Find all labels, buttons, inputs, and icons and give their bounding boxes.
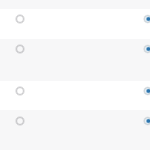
button[interactable]: Choose Option two [0, 39, 150, 81]
button[interactable]: Choose Option two [12, 41, 28, 57]
button[interactable]: Option four is selected [134, 113, 150, 129]
button[interactable]: Choose Option three [0, 81, 150, 110]
button[interactable]: Choose Option four [12, 113, 28, 129]
button[interactable]: Choose Option four [0, 110, 150, 150]
button[interactable]: Choose Option one [12, 11, 28, 27]
button[interactable]: Option one is selected [134, 11, 150, 27]
button[interactable]: Choose Option one [0, 9, 150, 39]
button[interactable]: Choose Option three [12, 83, 28, 99]
button[interactable]: Option two is selected [134, 41, 150, 57]
button[interactable]: Option three is selected [134, 83, 150, 99]
